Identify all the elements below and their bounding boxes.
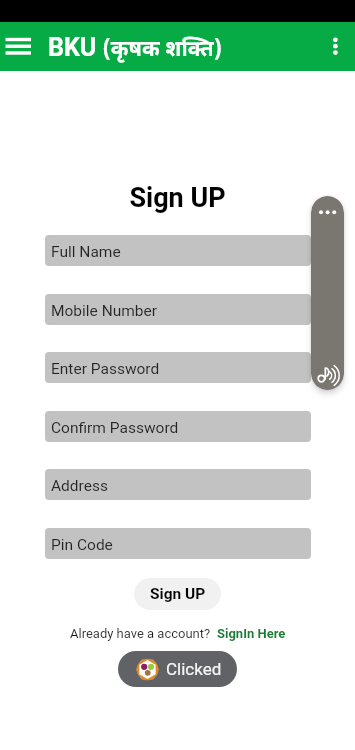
staticText: Full Name — [51, 243, 121, 261]
staticText: Already have a account? — [70, 626, 217, 641]
button[interactable]: Confirm Password — [45, 411, 311, 442]
staticText: Sign UP — [0, 182, 355, 214]
button[interactable]: Address — [45, 469, 311, 500]
staticText: Confirm Password — [51, 419, 179, 437]
staticText: Sign UP — [150, 585, 206, 603]
button[interactable]: Full Name — [45, 235, 311, 266]
button[interactable]: Sign UP — [134, 578, 221, 610]
button[interactable]: Pin Code — [45, 528, 311, 559]
staticText: Mobile Number — [51, 302, 158, 320]
staticText: BKU (कृषक शक्ति) — [48, 33, 222, 62]
button[interactable]: Open navigation menu — [0, 22, 37, 71]
button[interactable]: Mobile Number — [45, 294, 311, 325]
staticText: Pin Code — [51, 536, 113, 554]
button[interactable]: Accessibility menu — [311, 196, 344, 390]
button[interactable]: Enter Password — [45, 352, 311, 383]
staticText: Clicked — [166, 659, 222, 679]
staticText: Enter Password — [51, 360, 160, 378]
button[interactable]: More options — [319, 22, 355, 71]
staticText: SignIn Here — [217, 626, 286, 641]
button[interactable]: Clicked — [118, 651, 237, 687]
button[interactable]: SignIn Here — [217, 626, 286, 641]
staticText: Address — [51, 477, 108, 495]
